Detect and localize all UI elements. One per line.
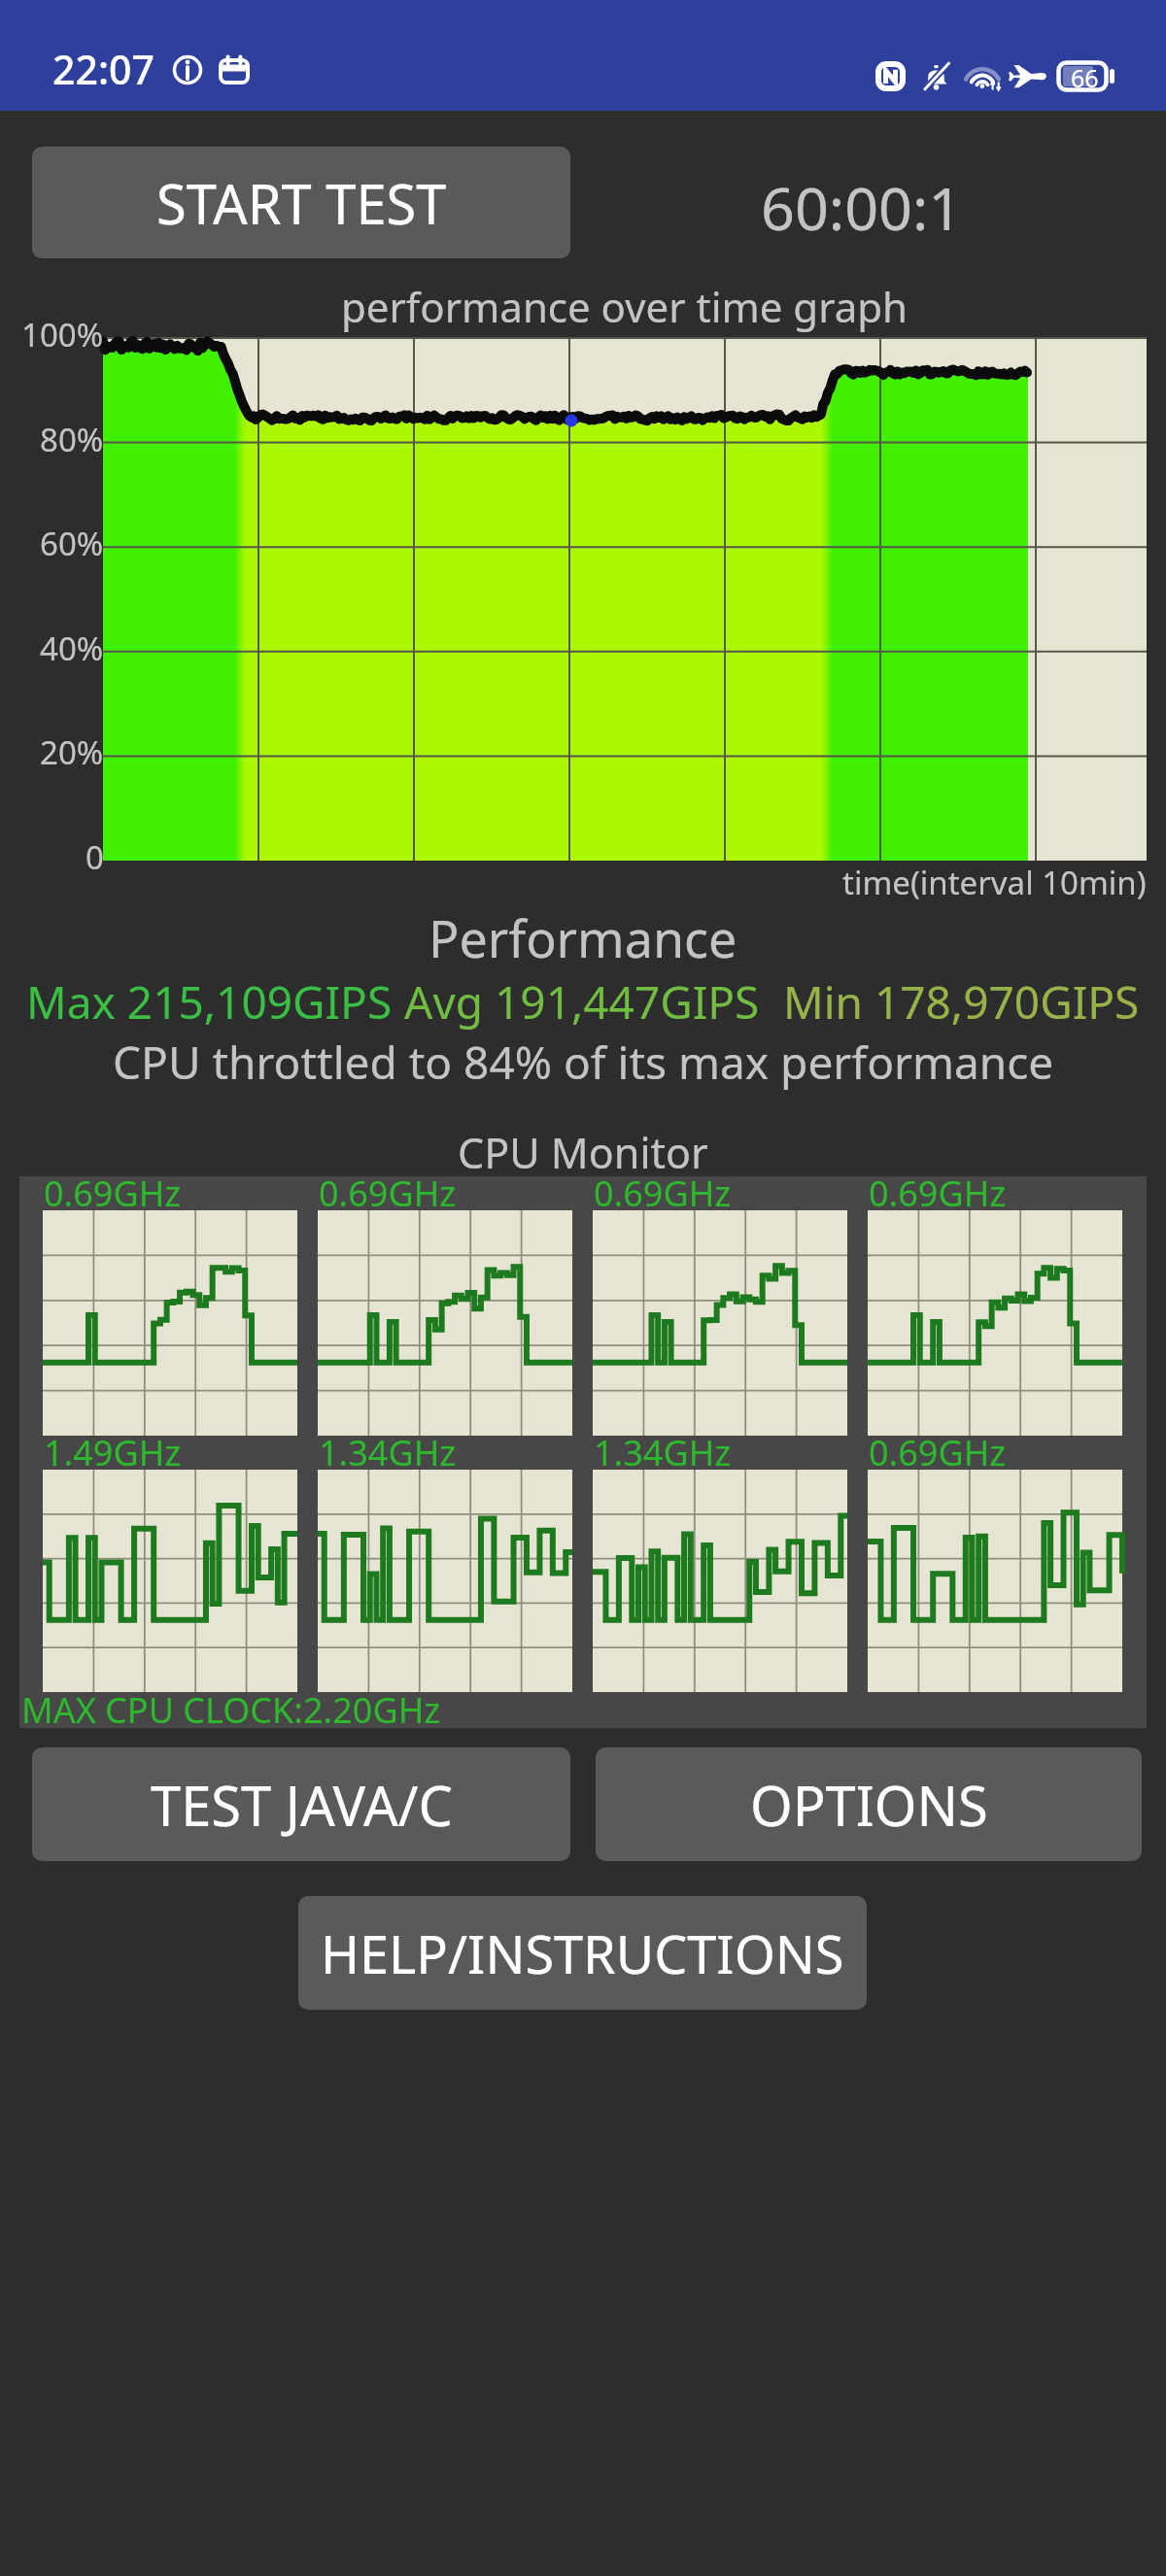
staticText: Performance: [429, 903, 737, 972]
staticText: 60:00:1: [761, 167, 963, 245]
staticText: OPTIONS: [750, 1768, 988, 1842]
button[interactable]: HELP/INSTRUCTIONS: [298, 1896, 867, 2010]
staticText: 0: [86, 835, 104, 879]
staticText: 1.49GHz: [44, 1429, 182, 1476]
staticText: CPU Monitor: [458, 1124, 708, 1181]
staticText: 1.34GHz: [319, 1429, 457, 1476]
staticText: 0.69GHz: [869, 1169, 1007, 1217]
button[interactable]: TEST JAVA/C: [32, 1747, 570, 1861]
other: Calendar: [219, 54, 250, 85]
other: Battery 66%: [1057, 61, 1117, 91]
staticText: 1.34GHz: [594, 1429, 732, 1476]
other: Silent mode: [920, 60, 952, 92]
staticText: HELP/INSTRUCTIONS: [321, 1917, 844, 1989]
staticText: Avg 191,447GIPS: [404, 971, 772, 1033]
button[interactable]: START TEST: [32, 147, 570, 258]
staticText: 80%: [40, 418, 104, 461]
staticText: 0.69GHz: [44, 1169, 182, 1217]
staticText: 0.69GHz: [869, 1429, 1007, 1476]
staticText: CPU throttled to 84% of its max performa…: [113, 1032, 1054, 1093]
staticText: START TEST: [156, 166, 447, 240]
staticText: 40%: [40, 627, 104, 670]
staticText: 20%: [40, 730, 104, 774]
staticText: 0.69GHz: [594, 1169, 732, 1217]
other: Info: [172, 54, 203, 85]
staticText: 60%: [40, 522, 104, 565]
button[interactable]: OPTIONS: [596, 1747, 1142, 1861]
staticText: 66: [1071, 61, 1099, 91]
staticText: 100%: [21, 313, 104, 356]
staticText: TEST JAVA/C: [151, 1768, 453, 1842]
staticText: 0.69GHz: [319, 1169, 457, 1217]
other: NFC: [875, 61, 906, 91]
staticText: performance over time graph: [341, 279, 909, 334]
staticText: Min 178,970GIPS: [772, 971, 1140, 1033]
staticText: MAX CPU CLOCK:2.20GHz: [21, 1686, 441, 1734]
staticText: Max 215,109GIPS: [26, 971, 404, 1033]
staticText: 22:07: [52, 42, 154, 96]
other: Wi-Fi: [967, 57, 1004, 94]
staticText: time(interval 10min): [842, 861, 1147, 904]
other: Airplane mode: [1009, 59, 1047, 92]
